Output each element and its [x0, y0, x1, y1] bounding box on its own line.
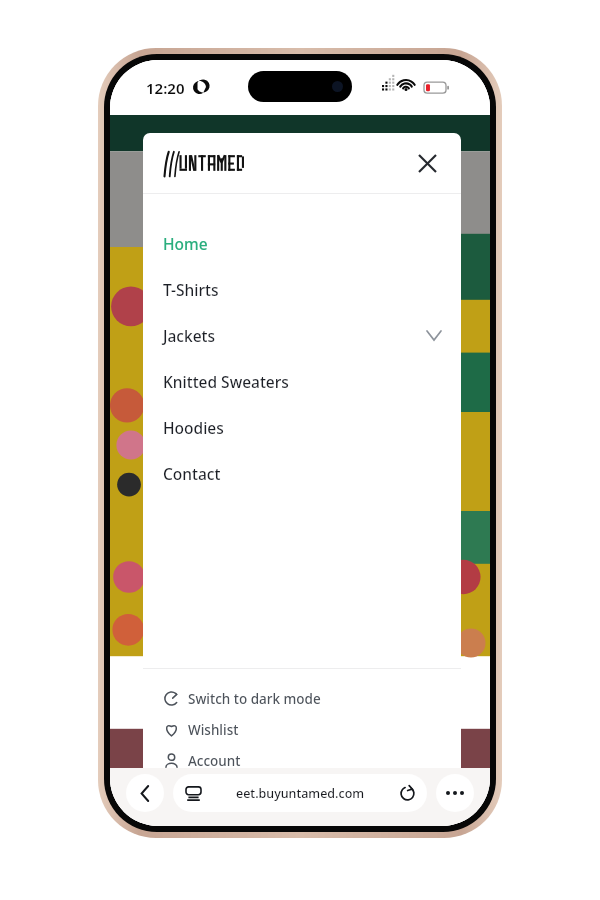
button[interactable]: Back — [126, 774, 164, 812]
staticText: Jackets — [163, 325, 216, 346]
staticText: Knitted Sweaters — [163, 371, 289, 392]
staticText: T-Shirts — [163, 279, 219, 300]
staticText: Switch to dark mode — [188, 690, 321, 708]
staticText: Wishlist — [188, 721, 239, 739]
staticText: 12:20 — [146, 78, 185, 98]
button[interactable]: Close menu — [407, 143, 447, 183]
staticText: eet.buyuntamed.com — [236, 785, 365, 802]
staticText: Hoodies — [163, 417, 224, 438]
button[interactable]: Untamed home — [163, 149, 243, 177]
button[interactable]: T-Shirts — [143, 277, 461, 301]
button[interactable]: Knitted Sweaters — [143, 369, 461, 393]
button[interactable]: Wishlist — [143, 714, 461, 745]
button[interactable]: Jackets — [143, 323, 461, 347]
button[interactable]: Switch to dark mode — [143, 683, 461, 714]
button[interactable]: Hoodies — [143, 415, 461, 439]
staticText: Account — [188, 752, 241, 770]
button[interactable]: eet.buyuntamed.com — [173, 774, 427, 812]
staticText: Home — [163, 233, 208, 254]
button[interactable]: More options — [436, 774, 474, 812]
button[interactable]: Home — [143, 231, 461, 255]
button[interactable]: Contact — [143, 461, 461, 485]
button[interactable]: Account — [143, 745, 461, 776]
staticText: Contact — [163, 463, 221, 484]
